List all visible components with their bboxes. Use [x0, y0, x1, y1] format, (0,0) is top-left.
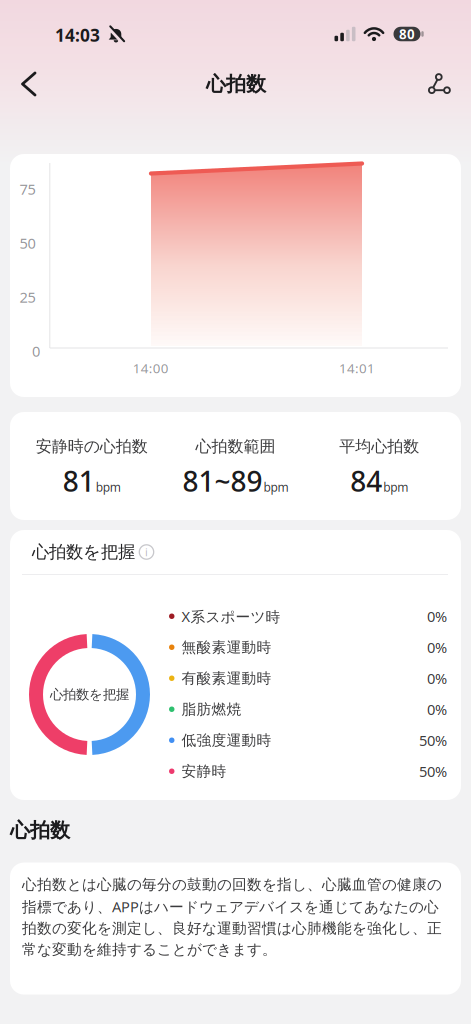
staticText: 14:03	[55, 23, 100, 46]
staticText: 80	[399, 25, 415, 43]
staticText: 25	[20, 287, 36, 307]
staticText: 0%	[427, 637, 447, 657]
staticText: bpm	[263, 479, 288, 495]
staticText: 有酸素運動時	[181, 669, 271, 687]
staticText: 安静時の心拍数	[36, 437, 148, 456]
staticText: 50	[20, 233, 36, 253]
staticText: 心拍数範囲	[195, 437, 275, 456]
staticText: 75	[20, 179, 36, 199]
staticText: 低強度運動時	[181, 731, 271, 749]
staticText: 心拍数	[206, 72, 266, 96]
staticText: 心拍数	[10, 818, 70, 843]
staticText: i	[145, 545, 148, 559]
staticText: 14:00	[133, 359, 169, 377]
staticText: bpm	[96, 479, 121, 495]
staticText: 50%	[419, 730, 447, 750]
staticText: 無酸素運動時	[181, 638, 271, 656]
staticText: bpm	[383, 479, 408, 495]
button[interactable]: Back	[21, 72, 37, 96]
button[interactable]: 情報	[139, 544, 154, 559]
staticText: 脂肪燃焼	[181, 700, 241, 718]
staticText: 84	[350, 462, 382, 499]
staticText: X系スポーツ時	[181, 606, 280, 626]
staticText: 0%	[427, 699, 447, 719]
staticText: 0	[32, 341, 40, 361]
button[interactable]: 共有	[425, 71, 453, 97]
staticText: 0%	[427, 668, 447, 688]
staticText: 平均心拍数	[339, 437, 419, 456]
staticText: 心拍数とは心臓の毎分の鼓動の回数を指し、心臓血管の健康の指標であり、APPはハー…	[22, 876, 442, 959]
staticText: 心拍数を把握	[50, 686, 129, 703]
staticText: 50%	[419, 761, 447, 781]
staticText: 安静時	[181, 762, 226, 780]
staticText: 81~89	[182, 462, 262, 499]
staticText: 14:01	[339, 359, 375, 377]
staticText: 81	[63, 462, 95, 499]
staticText: 心拍数を把握	[32, 541, 135, 563]
staticText: 0%	[427, 606, 447, 626]
